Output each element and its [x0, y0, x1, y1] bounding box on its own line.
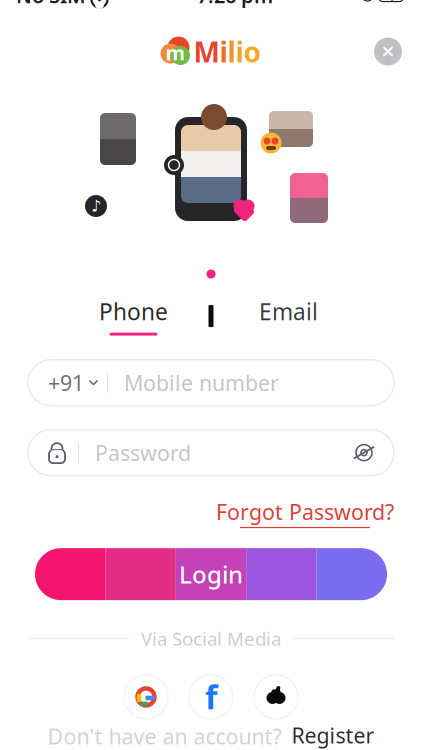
staticText: Email — [259, 296, 318, 327]
staticText: M — [193, 33, 219, 70]
staticText: i — [235, 33, 243, 70]
staticText: No SIM — [16, 0, 86, 9]
button[interactable]: Phone — [58, 296, 208, 336]
button[interactable]: Sign in with Facebook — [187, 673, 235, 721]
button[interactable]: Close — [366, 29, 410, 73]
button[interactable]: Register — [291, 721, 374, 750]
staticText: Phone — [99, 296, 168, 327]
staticText: Don't have an account? — [47, 722, 281, 750]
staticText: Password — [95, 438, 191, 467]
staticText: f — [205, 676, 217, 718]
staticText: ♪ — [91, 197, 101, 215]
button[interactable]: Forgot Password? — [216, 498, 394, 528]
button[interactable]: Sign in with Apple — [252, 673, 300, 721]
staticText: 7:26 pm — [197, 0, 273, 9]
staticText: Mobile number — [124, 368, 279, 397]
staticText: Register — [291, 721, 374, 749]
staticText: i — [219, 33, 227, 70]
staticText: Login — [179, 558, 243, 590]
staticText: m — [165, 39, 185, 66]
staticText: o — [243, 33, 261, 70]
button[interactable]: Login — [35, 548, 387, 600]
staticText: l — [227, 33, 235, 70]
button[interactable]: Sign in with Google — [122, 673, 170, 721]
staticText: +91 — [48, 368, 84, 397]
button[interactable]: Email — [213, 296, 363, 336]
staticText: Via Social Media — [141, 626, 281, 651]
staticText: Forgot Password? — [216, 498, 394, 526]
button[interactable]: Show password — [342, 431, 386, 475]
button[interactable]: +91 — [28, 360, 107, 406]
